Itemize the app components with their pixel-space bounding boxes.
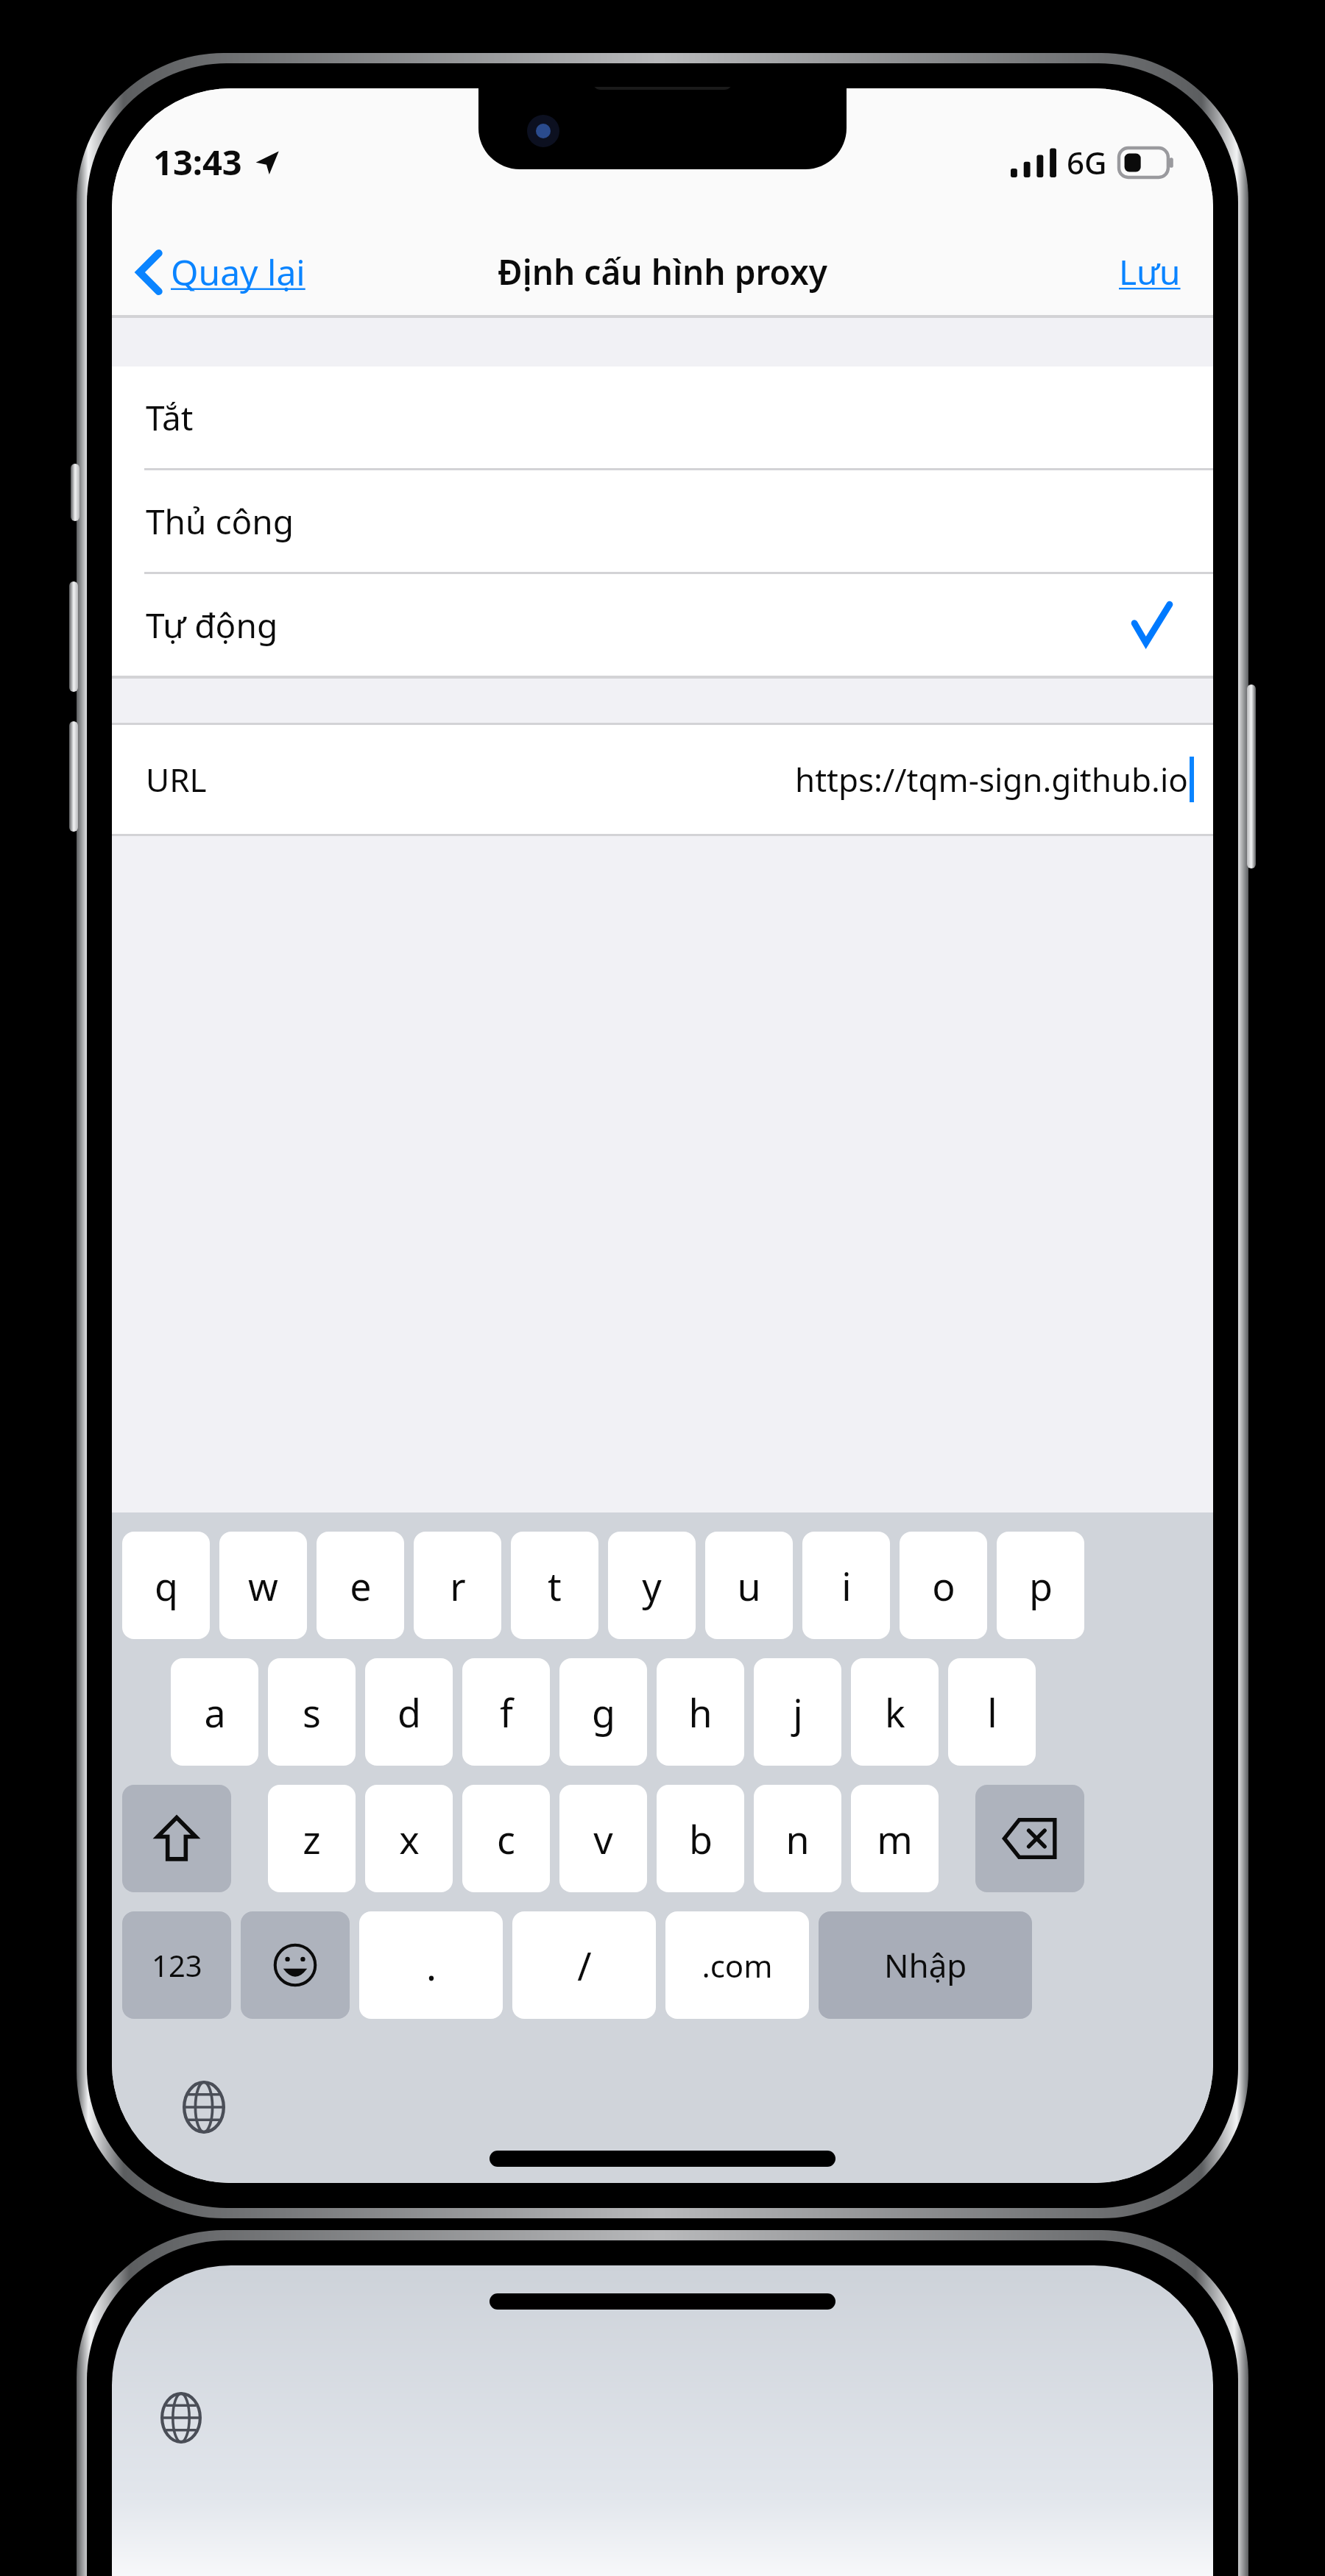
staticText: e: [350, 1560, 372, 1612]
button[interactable]: p: [997, 1532, 1084, 1639]
staticText: l: [987, 1686, 997, 1738]
staticText: .: [426, 1939, 437, 1992]
staticText: p: [1029, 1560, 1053, 1612]
button[interactable]: z: [268, 1785, 356, 1892]
button[interactable]: .: [359, 1911, 503, 2019]
button[interactable]: Lưu: [1107, 240, 1192, 304]
staticText: 123: [152, 1945, 202, 1985]
staticText: .com: [702, 1945, 773, 1986]
button[interactable]: u: [705, 1532, 793, 1639]
button[interactable]: k: [851, 1658, 939, 1766]
button[interactable]: t: [511, 1532, 598, 1639]
button[interactable]: URL: [112, 725, 1213, 834]
button[interactable]: a: [171, 1658, 258, 1766]
staticText: k: [885, 1686, 905, 1738]
button[interactable]: f: [462, 1658, 550, 1766]
button[interactable]: Tắt: [112, 367, 1213, 468]
button[interactable]: y: [608, 1532, 696, 1639]
staticText: Quay lại: [171, 248, 305, 296]
staticText: d: [397, 1686, 421, 1738]
button[interactable]: i: [802, 1532, 890, 1639]
staticText: v: [593, 1813, 613, 1865]
button[interactable]: q: [122, 1532, 210, 1639]
button[interactable]: n: [754, 1785, 841, 1892]
staticText: b: [689, 1813, 713, 1865]
button[interactable]: w: [219, 1532, 307, 1639]
button[interactable]: o: [900, 1532, 987, 1639]
staticText: 6G: [1067, 141, 1107, 183]
staticText: URL: [146, 757, 207, 802]
button[interactable]: Nhập: [819, 1911, 1032, 2019]
button[interactable]: v: [559, 1785, 647, 1892]
staticText: z: [303, 1813, 321, 1865]
staticText: 13:43: [153, 138, 242, 185]
staticText: u: [737, 1560, 761, 1612]
staticText: t: [548, 1560, 562, 1612]
staticText: n: [785, 1813, 810, 1865]
button[interactable]: d: [365, 1658, 453, 1766]
button[interactable]: c: [462, 1785, 550, 1892]
button[interactable]: l: [948, 1658, 1036, 1766]
button[interactable]: r: [414, 1532, 501, 1639]
staticText: Tắt: [146, 394, 194, 441]
button[interactable]: Xóa: [975, 1785, 1084, 1892]
staticText: r: [450, 1560, 466, 1612]
button[interactable]: g: [559, 1658, 647, 1766]
button[interactable]: s: [268, 1658, 356, 1766]
button[interactable]: 123: [122, 1911, 231, 2019]
button[interactable]: m: [851, 1785, 939, 1892]
staticText: Lưu: [1119, 249, 1181, 295]
button[interactable]: e: [317, 1532, 404, 1639]
staticText: /: [577, 1939, 592, 1992]
staticText: Nhập: [884, 1943, 967, 1987]
staticText: g: [592, 1686, 615, 1738]
button[interactable]: Quay lại: [127, 241, 317, 303]
button[interactable]: Emoji: [241, 1911, 350, 2019]
staticText: https://tqm-sign.github.io: [795, 757, 1188, 802]
button[interactable]: Đổi bàn phím: [183, 2081, 225, 2134]
button[interactable]: b: [657, 1785, 744, 1892]
button[interactable]: Thủ công: [112, 470, 1213, 572]
staticText: Tự động: [146, 602, 278, 648]
button[interactable]: h: [657, 1658, 744, 1766]
staticText: c: [497, 1813, 515, 1865]
staticText: f: [500, 1686, 513, 1738]
staticText: y: [642, 1560, 662, 1612]
staticText: o: [932, 1560, 955, 1612]
staticText: s: [303, 1686, 321, 1738]
button[interactable]: Tự động: [112, 574, 1213, 676]
staticText: x: [399, 1813, 420, 1865]
staticText: q: [155, 1560, 178, 1612]
button[interactable]: Shift: [122, 1785, 231, 1892]
staticText: j: [793, 1686, 803, 1738]
staticText: m: [877, 1813, 913, 1865]
button[interactable]: x: [365, 1785, 453, 1892]
staticText: w: [248, 1560, 278, 1612]
staticText: a: [204, 1686, 226, 1738]
button[interactable]: /: [512, 1911, 656, 2019]
button[interactable]: j: [754, 1658, 841, 1766]
button[interactable]: .com: [665, 1911, 809, 2019]
staticText: Định cấu hình proxy: [498, 249, 827, 295]
staticText: h: [688, 1686, 713, 1738]
staticText: Thủ công: [146, 498, 294, 545]
staticText: i: [841, 1560, 852, 1612]
